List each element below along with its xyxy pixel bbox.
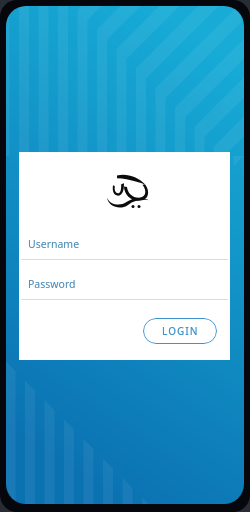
staticText: Password xyxy=(28,277,76,291)
button[interactable]: LOGIN xyxy=(143,318,217,344)
staticText: LOGIN xyxy=(162,324,199,338)
button[interactable]: Password xyxy=(19,277,230,307)
button[interactable]: Username xyxy=(19,237,230,267)
staticText: Username xyxy=(28,237,80,251)
